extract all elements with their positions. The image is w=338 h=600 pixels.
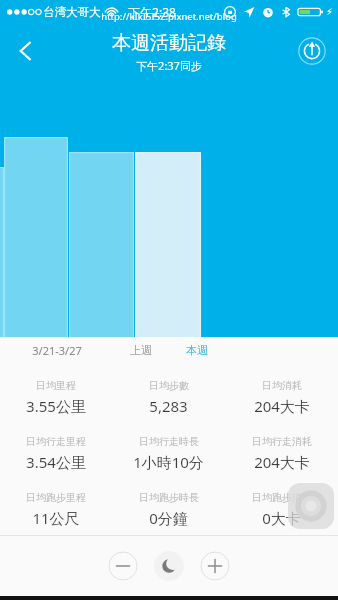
button[interactable]: Sync (298, 37, 326, 65)
button[interactable]: 日均跑步時長 (112, 491, 225, 528)
button[interactable]: 日均跑步里程 (0, 491, 112, 528)
staticText: http://kIkI5I5Z.pixnet.net/blog (101, 10, 237, 23)
staticText: ⚡ (326, 7, 333, 17)
staticText: 3.54公里 (26, 452, 86, 472)
staticText: 204大卡 (254, 452, 310, 472)
staticText: 日均跑步時長 (139, 491, 199, 504)
staticText: 11公尺 (32, 508, 80, 528)
button[interactable]: 日均行走里程 (0, 435, 112, 472)
staticText: 本週活動記錄 (112, 31, 226, 55)
staticText: 日均行走時長 (139, 435, 199, 448)
button[interactable]: 上週 (113, 337, 169, 363)
staticText: 日均行走消耗 (252, 435, 312, 448)
button[interactable]: 日均步數 (112, 379, 225, 416)
button[interactable]: 3/21-3/27 (0, 337, 113, 363)
button[interactable]: 日均行走時長 (112, 435, 225, 472)
staticText: 下午2:38 (128, 4, 176, 20)
staticText: 台湾大哥大 (43, 5, 101, 19)
button[interactable]: Decrease (108, 551, 138, 581)
staticText: 0分鐘 (149, 508, 188, 528)
button[interactable]: Increase (200, 551, 230, 581)
staticText: 日均里程 (36, 379, 76, 392)
staticText: 本週 (186, 343, 208, 357)
button[interactable]: AssistiveTouch (288, 483, 334, 529)
staticText: 1小時10分 (133, 452, 204, 472)
button[interactable]: Sleep (154, 551, 184, 581)
staticText: 日均跑步里程 (26, 491, 86, 504)
staticText: 5,283 (149, 396, 188, 416)
staticText: 日均跑步消耗 (252, 491, 312, 504)
button[interactable]: 日均消耗 (225, 379, 338, 416)
staticText: 0大卡 (262, 508, 301, 528)
button[interactable]: 日均跑步消耗 (225, 491, 338, 528)
staticText: 下午2:37同步 (136, 58, 202, 73)
button[interactable]: 日均行走消耗 (225, 435, 338, 472)
staticText: 204大卡 (254, 396, 310, 416)
staticText: 日均消耗 (262, 379, 302, 392)
button[interactable]: 本週 (169, 337, 225, 363)
staticText: 3.55公里 (26, 396, 86, 416)
staticText: 上週 (130, 343, 152, 357)
staticText: 3/21-3/27 (32, 343, 82, 358)
staticText: 日均步數 (149, 379, 189, 392)
button[interactable]: 日均里程 (0, 379, 112, 416)
staticText: 日均行走里程 (26, 435, 86, 448)
button[interactable]: Back (0, 23, 52, 79)
